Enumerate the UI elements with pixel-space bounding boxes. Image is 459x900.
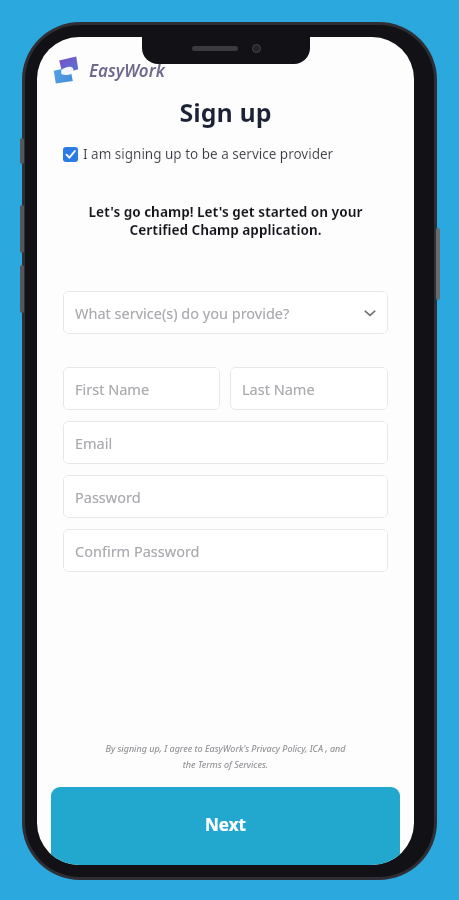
button[interactable]: What service(s) do you provide? bbox=[63, 291, 388, 334]
button[interactable]: Next bbox=[51, 787, 400, 865]
button[interactable]: Confirm Password bbox=[63, 529, 388, 572]
other: EasyWork logo bbox=[49, 53, 83, 87]
staticText: I am signing up to be a service provider bbox=[83, 145, 334, 163]
staticText: Sign up bbox=[37, 95, 414, 129]
staticText: Last Name bbox=[242, 379, 315, 399]
staticText: Confirm Password bbox=[75, 541, 200, 561]
button[interactable]: Email bbox=[63, 421, 388, 464]
button[interactable]: First Name bbox=[63, 367, 220, 410]
staticText: EasyWork bbox=[89, 59, 165, 82]
button[interactable]: By signing up, I agree to EasyWork's Pri… bbox=[59, 742, 392, 771]
button[interactable]: Password bbox=[63, 475, 388, 518]
staticText: What service(s) do you provide? bbox=[75, 303, 290, 323]
staticText: Let's go champ! Let's get started on you… bbox=[55, 203, 396, 239]
staticText: Next bbox=[205, 813, 246, 836]
staticText: First Name bbox=[75, 379, 150, 399]
staticText: Password bbox=[75, 487, 141, 507]
button[interactable]: I am signing up to be a service provider bbox=[37, 143, 414, 165]
staticText: Email bbox=[75, 433, 113, 453]
button[interactable]: Last Name bbox=[230, 367, 388, 410]
